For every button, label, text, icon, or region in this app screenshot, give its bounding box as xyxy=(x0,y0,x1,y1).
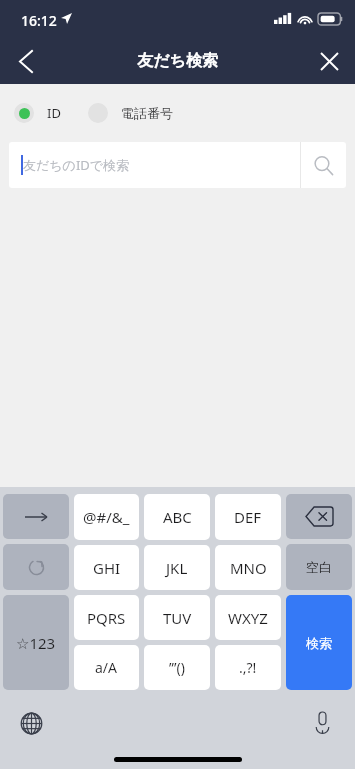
staticText: WXYZ xyxy=(228,608,268,628)
button[interactable]: PQRS xyxy=(74,595,139,640)
staticText: ID xyxy=(47,104,61,122)
button[interactable]: JKL xyxy=(144,545,210,590)
button[interactable]: Key xyxy=(286,494,352,539)
staticText: 検索 xyxy=(306,635,332,651)
staticText: 空白 xyxy=(306,559,332,575)
button[interactable]: Key xyxy=(3,544,69,590)
staticText: .,?! xyxy=(239,658,257,677)
staticText: 電話番号 xyxy=(121,105,173,121)
staticText: 16:12 xyxy=(21,11,57,30)
button[interactable]: GHI xyxy=(74,545,139,590)
button[interactable]: @#/&_ xyxy=(74,494,139,540)
staticText: ☆123 xyxy=(16,633,56,653)
button[interactable]: 検索 xyxy=(286,595,352,690)
button[interactable]: MNO xyxy=(215,545,281,590)
staticText: TUV xyxy=(163,608,192,628)
button[interactable]: ID xyxy=(14,103,61,123)
staticText: GHI xyxy=(93,558,121,578)
staticText: 友だちのIDで検索 xyxy=(23,156,130,174)
button[interactable]: WXYZ xyxy=(215,595,281,640)
staticText: @#/&_ xyxy=(83,507,130,527)
staticText: JKL xyxy=(166,558,188,578)
staticText: 友だち検索 xyxy=(137,51,218,71)
staticText: PQRS xyxy=(87,608,126,628)
button[interactable]: Close xyxy=(303,38,355,84)
button[interactable]: ’”() xyxy=(144,645,210,690)
staticText: MNO xyxy=(230,558,267,578)
button[interactable]: .,?! xyxy=(215,645,281,690)
button[interactable]: ABC xyxy=(144,494,210,540)
staticText: DEF xyxy=(234,507,262,527)
staticText: a/A xyxy=(95,658,118,677)
button[interactable]: DEF xyxy=(215,494,281,540)
button[interactable]: TUV xyxy=(144,595,210,640)
button[interactable]: Back xyxy=(0,38,52,84)
button[interactable]: ☆123 xyxy=(3,595,69,690)
button[interactable]: 友だちのIDで検索 xyxy=(9,142,346,188)
button[interactable]: Key xyxy=(3,494,69,539)
staticText: ABC xyxy=(163,507,192,527)
button[interactable]: Voice input xyxy=(301,702,343,744)
button[interactable]: a/A xyxy=(74,645,139,690)
button[interactable]: 空白 xyxy=(286,544,352,590)
button[interactable]: Change keyboard xyxy=(10,702,52,744)
staticText: ’”() xyxy=(169,658,185,677)
button[interactable]: 電話番号 xyxy=(88,103,173,123)
